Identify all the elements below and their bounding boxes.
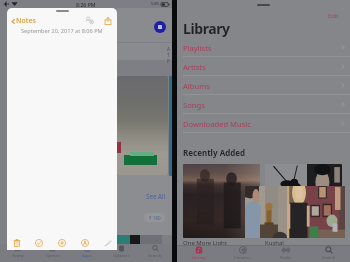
button[interactable]: Checklist — [32, 236, 45, 249]
button[interactable]: Songs — [177, 95, 350, 114]
button[interactable]: Share — [102, 15, 113, 26]
button[interactable]: Playlists — [177, 38, 350, 57]
button[interactable]: Notes — [10, 16, 37, 26]
button[interactable]: Add people — [84, 15, 95, 26]
button[interactable]: Radio — [264, 245, 307, 262]
staticText: Kushal — [265, 239, 284, 247]
button[interactable]: Apps — [70, 244, 104, 262]
staticText: Playlists — [183, 43, 212, 53]
button[interactable]: Add attachment — [55, 236, 68, 249]
staticText: Albums — [183, 81, 210, 91]
staticText: Updates — [113, 253, 130, 259]
button[interactable]: Artists — [177, 57, 350, 76]
staticText: A T P — [167, 46, 170, 64]
button[interactable]: Albums — [177, 76, 350, 95]
staticText: 54% — [151, 1, 160, 7]
staticText: Games — [46, 253, 60, 259]
staticText: Apps — [82, 253, 92, 259]
staticText: Songs — [183, 100, 205, 110]
staticText: Today — [12, 253, 24, 259]
staticText: Radio — [280, 255, 292, 261]
button[interactable]: Compose — [101, 236, 114, 249]
staticText: Downloaded Music — [183, 119, 251, 129]
button[interactable]: See All — [146, 192, 166, 200]
staticText: 8:26 PM — [76, 1, 96, 8]
button[interactable]: Markup — [78, 236, 91, 249]
button[interactable]: Account — [154, 21, 166, 33]
button[interactable]: Delete — [10, 236, 23, 249]
staticText: Search — [148, 253, 162, 259]
button[interactable]: Connect — [221, 245, 264, 262]
button[interactable]: Library — [177, 245, 221, 262]
button[interactable]: Search — [138, 244, 172, 262]
staticText: Library — [183, 19, 230, 38]
button[interactable]: ₹ 160 — [144, 213, 165, 222]
staticText: Edit — [328, 12, 339, 20]
button[interactable]: Today — [0, 244, 35, 262]
staticText: Artists — [183, 62, 206, 72]
staticText: Search — [322, 255, 336, 261]
button[interactable]: Search — [307, 245, 350, 262]
staticText: Library — [192, 255, 206, 261]
staticText: One More Light — [183, 239, 227, 247]
button[interactable]: Games — [35, 244, 70, 262]
staticText: Recently Added — [183, 147, 246, 158]
button[interactable]: Edit — [326, 11, 341, 21]
staticText: Notes — [16, 16, 36, 26]
button[interactable]: Updates — [104, 244, 138, 262]
staticText: Connect — [234, 255, 251, 261]
button[interactable]: Downloaded Music — [177, 114, 350, 133]
staticText: ₹ 160 — [149, 215, 161, 221]
staticText: September 20, 2017 at 8:06 PM — [21, 27, 103, 35]
